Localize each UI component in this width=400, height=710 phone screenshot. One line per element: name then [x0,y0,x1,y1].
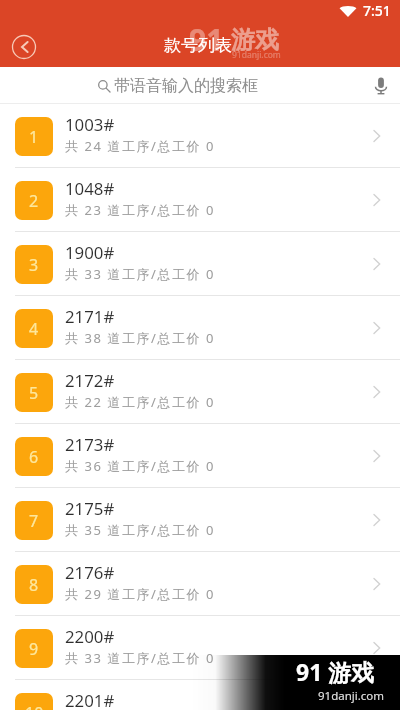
staticText: 共 33 道工序/总工价 0 [65,265,215,283]
staticText: 2175# [65,497,115,520]
staticText: 1048# [65,177,115,200]
staticText: 9 [29,638,39,660]
staticText: 共 38 道工序/总工价 0 [65,329,215,347]
button[interactable]: 5 [0,360,400,424]
staticText: 1003# [65,113,115,136]
staticText: 2173# [65,433,115,456]
button[interactable]: 9 [0,616,400,680]
button[interactable]: 10 [0,680,400,710]
staticText: 91danji.com [232,49,281,61]
button[interactable]: 4 [0,296,400,360]
staticText: 10 [25,702,44,710]
staticText: 91 [189,19,224,60]
staticText: 8 [29,574,39,596]
staticText: 2 [29,190,39,212]
staticText: 1 [29,126,39,148]
staticText: 7:51 [363,1,391,20]
button[interactable]: 1 [0,104,400,168]
staticText: 共 22 道工序/总工价 0 [65,393,215,411]
button[interactable]: 3 [0,232,400,296]
staticText: 游戏 [231,25,279,55]
staticText: 1900# [65,241,115,264]
staticText: 6 [29,446,39,468]
staticText: 91 游戏 [296,656,375,687]
button[interactable]: Back [10,33,38,61]
staticText: 2176# [65,561,115,584]
staticText: 2200# [65,625,115,648]
staticText: 7 [29,510,39,532]
staticText: 2171# [65,305,115,328]
staticText: 共 33 道工序/总工价 0 [65,649,215,667]
staticText: 共 35 道工序/总工价 0 [65,521,215,539]
button[interactable]: 8 [0,552,400,616]
button[interactable]: 7 [0,488,400,552]
button[interactable]: 2 [0,168,400,232]
staticText: 2201# [65,689,115,710]
staticText: 共 24 道工序/总工价 0 [65,137,215,155]
staticText: 5 [29,382,39,404]
staticText: 4 [29,318,39,340]
staticText: 91danji.com [318,688,385,704]
staticText: 共 23 道工序/总工价 0 [65,201,215,219]
staticText: 款号列表 [164,35,232,56]
staticText: 2172# [65,369,115,392]
staticText: 共 36 道工序/总工价 0 [65,457,215,475]
staticText: 带语音输入的搜索框 [114,76,258,96]
button[interactable]: Voice search [366,71,396,101]
button[interactable]: 6 [0,424,400,488]
staticText: 共 29 道工序/总工价 0 [65,585,215,603]
staticText: 3 [29,254,39,276]
